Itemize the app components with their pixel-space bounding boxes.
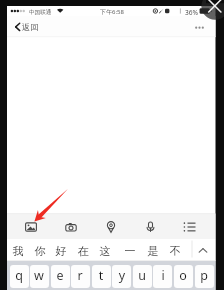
staticText: 好 (47, 244, 75, 261)
staticText: r (66, 267, 94, 284)
staticText: t (87, 267, 115, 284)
button[interactable]: Camera (59, 215, 83, 239)
button[interactable] (29, 239, 51, 261)
button[interactable] (153, 265, 172, 288)
button[interactable] (142, 239, 164, 261)
button[interactable] (71, 265, 90, 288)
button[interactable] (51, 265, 70, 288)
button[interactable]: Expand candidates (193, 240, 213, 260)
button[interactable] (7, 239, 29, 261)
staticText: q (5, 267, 33, 284)
button[interactable] (112, 265, 131, 288)
staticText: 不 (161, 244, 189, 261)
button[interactable]: More (178, 215, 202, 239)
button[interactable]: Location (99, 215, 123, 239)
staticText: 你 (26, 244, 54, 261)
staticText: 下午6:58 (100, 8, 124, 16)
button[interactable] (119, 239, 141, 261)
staticText: i (149, 267, 177, 284)
staticText: 36% (185, 8, 199, 17)
staticText: w (25, 267, 53, 284)
button[interactable]: More options (188, 19, 210, 36)
button[interactable] (195, 265, 214, 288)
staticText: o (169, 267, 197, 284)
button[interactable] (92, 265, 111, 288)
button[interactable] (10, 265, 29, 288)
staticText: 我 (4, 244, 32, 261)
staticText: 中国联通 (29, 9, 52, 16)
staticText: y (108, 267, 136, 284)
button[interactable] (174, 265, 193, 288)
button[interactable]: Close (204, 0, 224, 18)
button[interactable] (9, 19, 41, 37)
button[interactable] (50, 239, 72, 261)
staticText: 这 (91, 244, 119, 261)
staticText: e (46, 267, 74, 284)
button[interactable]: Voice message (139, 215, 163, 239)
button[interactable] (72, 239, 94, 261)
button[interactable] (94, 239, 116, 261)
staticText: 在 (69, 244, 97, 261)
button[interactable] (164, 239, 186, 261)
button[interactable] (30, 265, 49, 288)
button[interactable]: Photos (19, 215, 43, 239)
button[interactable] (133, 265, 152, 288)
staticText: 是 (139, 244, 167, 261)
staticText: 返回 (22, 22, 39, 32)
staticText: 一 (116, 244, 144, 261)
staticText: p (190, 267, 218, 284)
staticText: u (128, 267, 156, 284)
